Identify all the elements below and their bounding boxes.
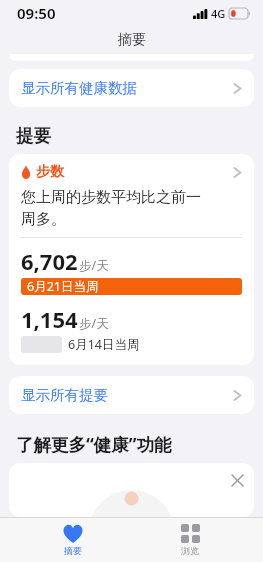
staticText: 步/天 bbox=[79, 257, 109, 274]
button[interactable]: 摘要 bbox=[28, 518, 118, 562]
staticText: 6月21日当周 bbox=[27, 278, 99, 295]
staticText: 步/天 bbox=[79, 315, 109, 332]
button[interactable]: 步数 bbox=[9, 154, 254, 365]
staticText: 显示所有提要 bbox=[21, 386, 233, 404]
staticText: 您上周的步数平均比之前一 周多。 bbox=[21, 188, 201, 228]
staticText: 09:50 bbox=[17, 3, 56, 23]
staticText: 摘要 bbox=[118, 31, 146, 49]
button[interactable]: 关闭 bbox=[226, 469, 248, 491]
staticText: 浏览 bbox=[181, 545, 199, 556]
staticText: 6月14日当周 bbox=[68, 336, 140, 353]
button[interactable]: 关闭 bbox=[9, 463, 254, 517]
staticText: 步数 bbox=[36, 163, 64, 181]
staticText: 摘要 bbox=[64, 545, 82, 556]
staticText: 4G bbox=[211, 6, 226, 21]
button[interactable]: 显示所有提要 bbox=[9, 376, 254, 414]
staticText: 1,154 bbox=[21, 304, 78, 334]
staticText: 6,702 bbox=[21, 246, 78, 276]
staticText: 提要 bbox=[16, 125, 51, 147]
button[interactable]: 显示所有健康数据 bbox=[9, 69, 254, 107]
button[interactable]: 浏览 bbox=[145, 518, 235, 562]
staticText: 显示所有健康数据 bbox=[21, 79, 233, 97]
staticText: 了解更多“健康”功能 bbox=[16, 432, 172, 456]
